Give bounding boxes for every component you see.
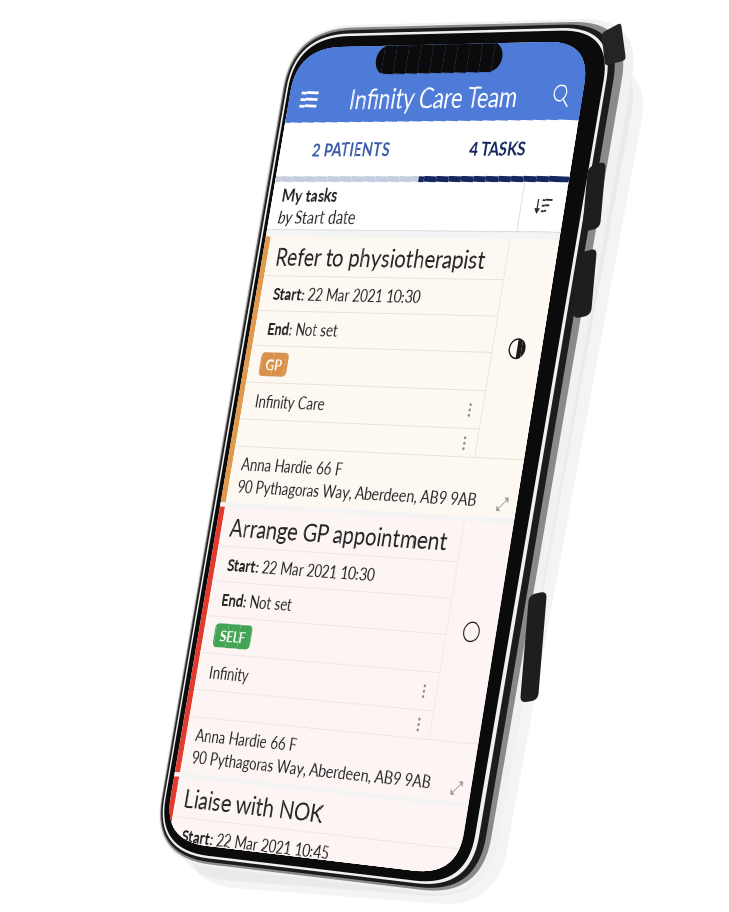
button[interactable]: Change sort order — [335, 143, 390, 193]
button[interactable]: Change sort order — [335, 143, 390, 193]
button[interactable]: 4 TASKS — [195, 80, 390, 137]
button[interactable]: Search — [338, 31, 390, 80]
button[interactable]: Search — [338, 31, 390, 80]
button[interactable]: 4 TASKS — [195, 80, 390, 137]
button[interactable]: Search — [338, 31, 390, 80]
button[interactable]: Change sort order — [335, 143, 390, 193]
button[interactable]: Change sort order — [335, 143, 390, 193]
button[interactable]: 4 TASKS — [195, 80, 390, 137]
button[interactable]: Search — [338, 31, 390, 80]
button[interactable]: 4 TASKS — [195, 80, 390, 137]
button[interactable]: Search — [338, 31, 390, 80]
button[interactable]: Search — [338, 31, 390, 80]
button[interactable]: Search — [338, 31, 390, 80]
button[interactable]: Search — [338, 31, 390, 80]
button[interactable]: 4 TASKS — [195, 80, 390, 137]
button[interactable]: Search — [338, 31, 390, 80]
button[interactable]: 4 TASKS — [195, 80, 390, 137]
button[interactable]: 4 TASKS — [195, 80, 390, 137]
button[interactable]: Search — [338, 31, 390, 80]
button[interactable]: Change sort order — [335, 143, 390, 193]
button[interactable]: Search — [338, 31, 390, 80]
button[interactable]: 4 TASKS — [195, 80, 390, 137]
button[interactable]: 4 TASKS — [195, 80, 390, 137]
button[interactable]: 4 TASKS — [195, 80, 390, 137]
button[interactable]: Change sort order — [335, 143, 390, 193]
button[interactable]: Change sort order — [335, 143, 390, 193]
button[interactable]: 4 TASKS — [195, 80, 390, 137]
button[interactable]: 4 TASKS — [195, 80, 390, 137]
button[interactable]: Change sort order — [335, 143, 390, 193]
button[interactable]: Change sort order — [335, 143, 390, 193]
button[interactable]: 4 TASKS — [195, 80, 390, 137]
button[interactable]: 4 TASKS — [195, 80, 390, 137]
button[interactable]: Change sort order — [335, 143, 390, 193]
button[interactable]: 4 TASKS — [195, 80, 390, 137]
button[interactable]: Search — [338, 31, 390, 80]
button[interactable]: Change sort order — [335, 143, 390, 193]
button[interactable]: Search — [338, 31, 390, 80]
button[interactable]: Change sort order — [335, 143, 390, 193]
button[interactable]: Change sort order — [335, 143, 390, 193]
button[interactable]: 4 TASKS — [195, 80, 390, 137]
button[interactable]: Change sort order — [335, 143, 390, 193]
button[interactable]: Search — [338, 31, 390, 80]
button[interactable]: Change sort order — [335, 143, 390, 193]
button[interactable]: Search — [338, 31, 390, 80]
button[interactable]: Search — [338, 31, 390, 80]
button[interactable]: Change sort order — [335, 143, 390, 193]
button[interactable]: Search — [338, 31, 390, 80]
button[interactable]: 4 TASKS — [195, 80, 390, 137]
button[interactable]: 4 TASKS — [195, 80, 390, 137]
button[interactable]: Search — [338, 31, 390, 80]
button[interactable]: Change sort order — [335, 143, 390, 193]
button[interactable]: Change sort order — [335, 143, 390, 193]
button[interactable]: Search — [338, 31, 390, 80]
button[interactable]: Change sort order — [335, 143, 390, 193]
button[interactable]: Change sort order — [335, 143, 390, 193]
button[interactable]: Change sort order — [335, 143, 390, 193]
button[interactable]: Change sort order — [335, 143, 390, 193]
